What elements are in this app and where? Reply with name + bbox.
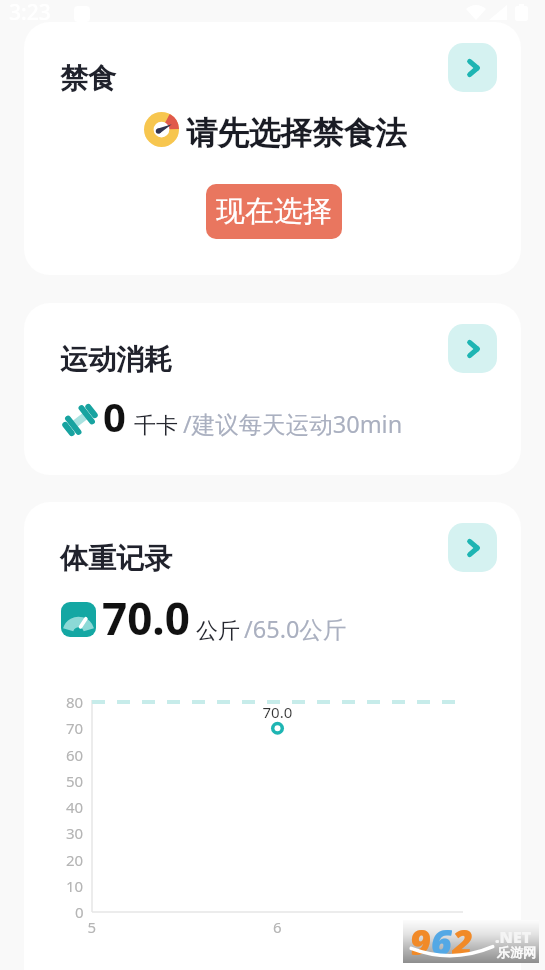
staticText: 6 xyxy=(431,917,452,960)
staticText: 0 xyxy=(103,389,126,443)
staticText: 体重记录 xyxy=(60,541,172,576)
staticText: 请先选择禁食法 xyxy=(186,114,407,154)
button[interactable]: 现在选择 xyxy=(206,184,342,239)
staticText: 公斤 xyxy=(196,617,240,645)
staticText: /建议每天运动30min xyxy=(183,408,403,440)
staticText: 千卡 xyxy=(134,412,178,440)
staticText: 禁食 xyxy=(60,61,116,96)
staticText: 乐游网 xyxy=(497,944,536,960)
button[interactable]: Open details xyxy=(448,43,497,92)
staticText: 70.0 xyxy=(102,588,190,648)
staticText: 2 xyxy=(452,917,473,960)
staticText: /65.0公斤 xyxy=(244,613,347,645)
staticText: 运动消耗 xyxy=(60,342,172,377)
staticText: 9 xyxy=(410,917,431,960)
button[interactable]: Open details xyxy=(448,324,497,373)
staticText: .NET xyxy=(495,926,532,948)
staticText: 现在选择 xyxy=(216,193,332,230)
button[interactable]: Open details xyxy=(448,523,497,572)
